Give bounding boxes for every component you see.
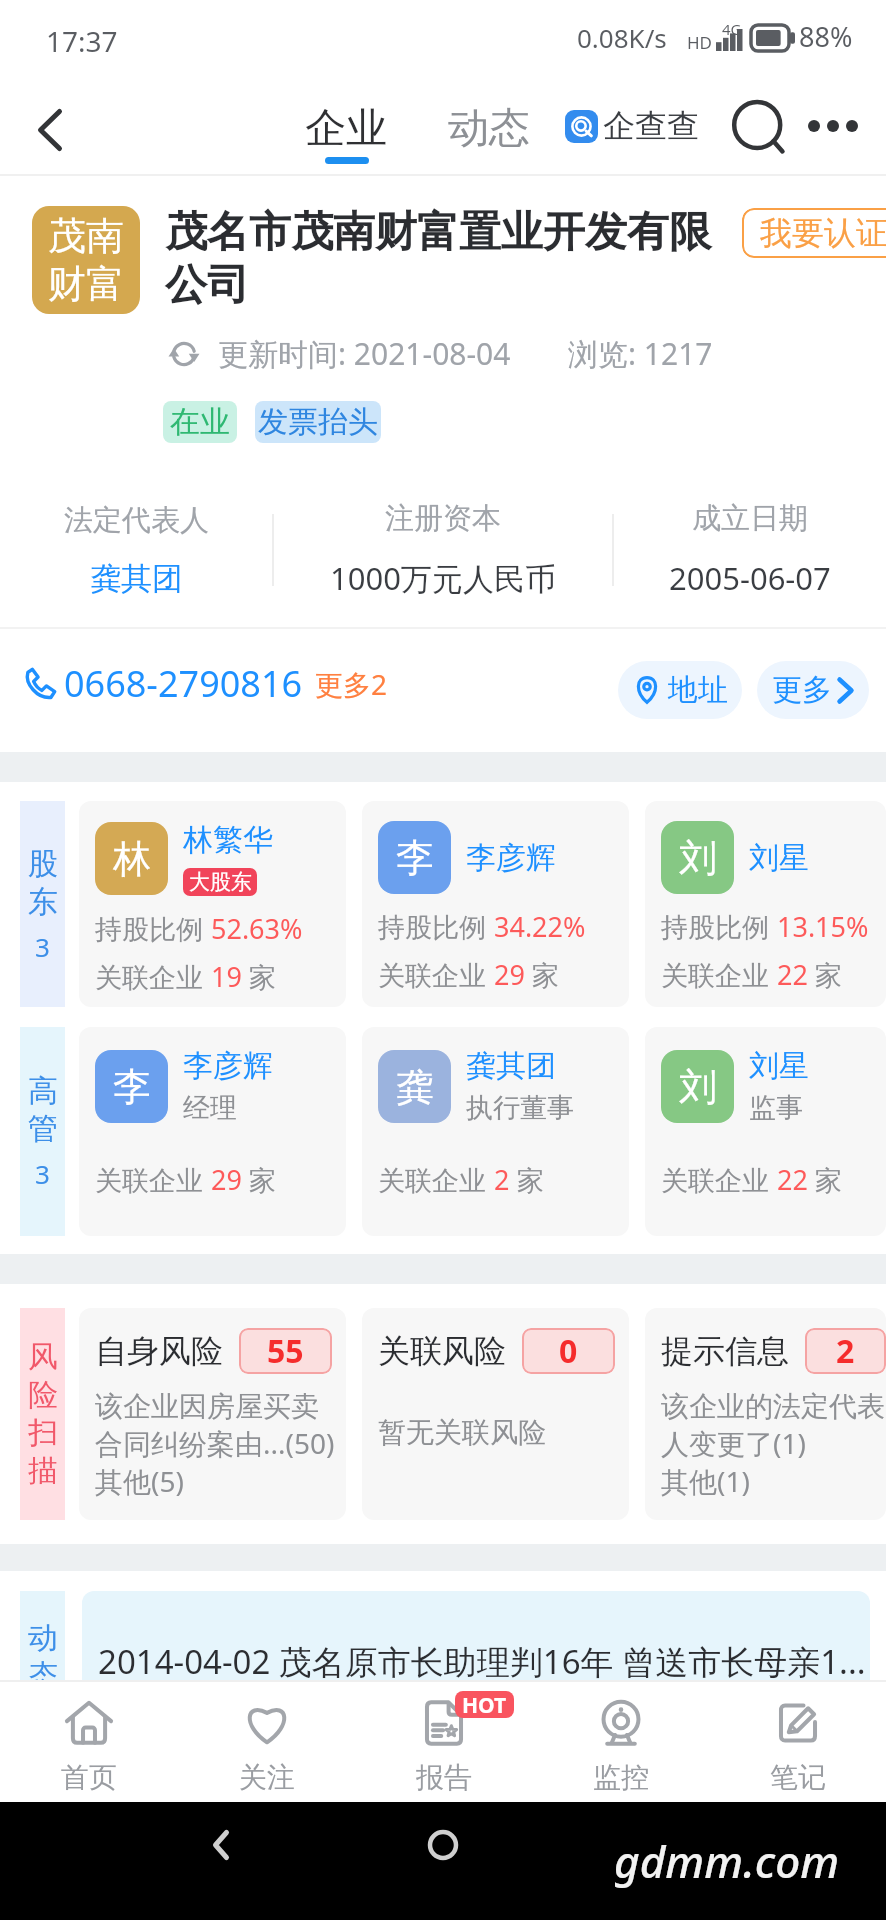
- staticText: 34.22%: [494, 908, 586, 945]
- staticText: 55: [267, 1329, 304, 1373]
- staticText: 首页: [61, 1760, 117, 1795]
- staticText: 注册资本: [385, 500, 501, 537]
- staticText: 29: [211, 1161, 242, 1198]
- staticText: 1000万元人民币: [330, 557, 556, 599]
- button[interactable]: 我要认证: [742, 208, 886, 258]
- staticText: 林繁华: [183, 821, 273, 859]
- staticText: 刘: [679, 834, 717, 882]
- staticText: 22: [777, 1161, 808, 1198]
- button[interactable]: 茂南: [32, 206, 140, 314]
- button[interactable]: Back: [190, 1814, 252, 1876]
- button[interactable]: 刘: [645, 801, 886, 1007]
- staticText: 李: [396, 834, 434, 882]
- staticText: 茂名市茂南财富置业开发有限公司: [165, 206, 735, 311]
- staticText: 扫: [28, 1414, 58, 1452]
- staticText: 该企业因房屋买卖: [95, 1389, 319, 1424]
- staticText: 动态: [448, 103, 530, 155]
- staticText: 家: [510, 1161, 545, 1198]
- staticText: 描: [28, 1452, 58, 1490]
- button[interactable]: 监控: [532, 1682, 709, 1802]
- staticText: 在业: [170, 403, 230, 441]
- staticText: 其他(5): [95, 1462, 184, 1500]
- staticText: 成立日期: [692, 500, 808, 537]
- button[interactable]: Home: [412, 1814, 474, 1876]
- staticText: 家: [808, 956, 843, 993]
- staticText: 提示信息: [661, 1331, 789, 1371]
- button[interactable]: 提示信息: [645, 1308, 886, 1520]
- staticText: 0.08K/s: [577, 20, 667, 55]
- button[interactable]: 林: [79, 801, 346, 1007]
- staticText: 东: [28, 883, 58, 921]
- staticText: 2: [836, 1329, 855, 1373]
- button[interactable]: 笔记: [709, 1682, 886, 1802]
- button[interactable]: 更多: [757, 661, 869, 719]
- button[interactable]: Back: [16, 96, 84, 164]
- staticText: 持股比例: [378, 908, 494, 945]
- staticText: 股: [28, 845, 58, 883]
- staticText: 关联风险: [378, 1331, 506, 1371]
- staticText: 13.15%: [777, 908, 869, 945]
- staticText: 关联企业: [95, 1161, 211, 1198]
- staticText: 茂南: [48, 212, 124, 260]
- staticText: HOT: [462, 1691, 507, 1718]
- staticText: 企查查: [603, 106, 699, 146]
- staticText: 关联企业: [95, 958, 211, 995]
- staticText: 关联企业: [378, 956, 494, 993]
- button[interactable]: 李: [362, 801, 629, 1007]
- button[interactable]: 茂名市茂南财富置业开发有限公司: [165, 206, 735, 311]
- staticText: 林: [113, 835, 151, 883]
- staticText: 刘: [679, 1063, 717, 1111]
- staticText: 刘星: [749, 839, 809, 877]
- staticText: 家: [808, 1161, 843, 1198]
- button[interactable]: 李: [79, 1027, 346, 1236]
- staticText: 法定代表人: [64, 502, 209, 539]
- button[interactable]: 首页: [0, 1682, 178, 1802]
- staticText: 险: [28, 1376, 58, 1414]
- button[interactable]: 0668-2790816: [24, 659, 388, 708]
- button[interactable]: Search: [729, 99, 791, 161]
- button[interactable]: 企业: [305, 103, 387, 155]
- staticText: 李彦辉: [466, 839, 556, 877]
- staticText: 刘星: [749, 1047, 809, 1085]
- button[interactable]: 法定代表人: [0, 470, 272, 629]
- button[interactable]: 动: [20, 1591, 65, 1801]
- button[interactable]: 关联风险: [362, 1308, 629, 1520]
- staticText: 22: [777, 956, 808, 993]
- staticText: 动: [28, 1619, 58, 1657]
- button[interactable]: 龚: [362, 1027, 629, 1236]
- button[interactable]: 动态: [448, 103, 530, 155]
- staticText: 关联企业: [661, 1161, 777, 1198]
- staticText: 龚: [396, 1063, 434, 1111]
- staticText: 经理: [183, 1091, 237, 1125]
- button[interactable]: 企查查: [565, 106, 699, 146]
- button[interactable]: 股: [20, 801, 65, 1007]
- staticText: 家: [525, 956, 560, 993]
- staticText: 浏览: 1217: [568, 333, 713, 374]
- button[interactable]: 地址: [618, 661, 742, 719]
- button[interactable]: 在业: [163, 401, 237, 443]
- button[interactable]: 注册资本: [274, 470, 612, 629]
- staticText: gdmm.com: [614, 1831, 840, 1891]
- staticText: 3: [35, 1156, 50, 1191]
- staticText: 3: [35, 929, 50, 964]
- button[interactable]: 风: [20, 1308, 65, 1520]
- staticText: 关联企业: [378, 1161, 494, 1198]
- button[interactable]: 关注: [178, 1682, 355, 1802]
- button[interactable]: 2014-04-02 茂名原市长助理判16年 曾送市长母亲1...: [82, 1591, 870, 1801]
- button[interactable]: 发票抬头: [255, 401, 381, 443]
- staticText: 地址: [668, 671, 728, 709]
- button[interactable]: 刘: [645, 1027, 886, 1236]
- staticText: 更多: [772, 671, 832, 709]
- staticText: 17:37: [46, 22, 118, 60]
- staticText: 人变更了(1): [661, 1424, 806, 1462]
- staticText: 关注: [239, 1760, 295, 1795]
- staticText: 龚其团: [90, 559, 183, 598]
- button[interactable]: 高: [20, 1027, 65, 1236]
- button[interactable]: 成立日期: [614, 470, 886, 629]
- staticText: 高: [28, 1072, 58, 1110]
- button[interactable]: 自身风险: [79, 1308, 346, 1520]
- button[interactable]: HOT: [355, 1682, 532, 1802]
- staticText: 19: [211, 958, 242, 995]
- staticText: 龚其团: [466, 1047, 556, 1085]
- button[interactable]: More options: [805, 106, 867, 146]
